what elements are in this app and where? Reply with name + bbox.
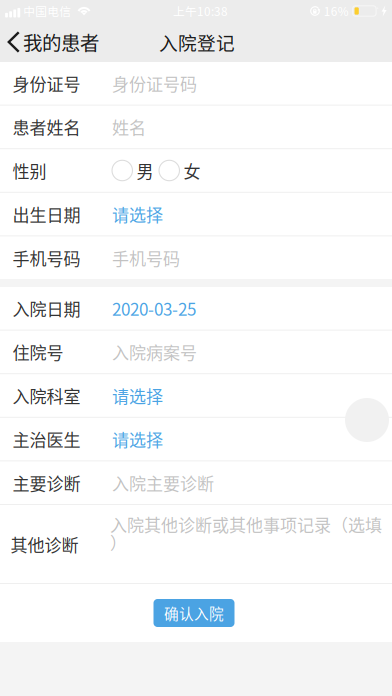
staticText: 住院号 <box>12 339 63 364</box>
button[interactable]: 入院日期 <box>0 287 392 330</box>
button[interactable]: 患者姓名 <box>0 106 392 148</box>
staticText: 手机号码 <box>12 245 80 270</box>
staticText: 入院其他诊断或其他事项记录（选填 <box>110 512 382 537</box>
button[interactable]: 确认入院 <box>155 599 236 627</box>
staticText: 2020-03-25 <box>112 296 196 321</box>
staticText: 16% <box>324 2 349 19</box>
staticText: 中国电信 <box>23 2 71 19</box>
button[interactable]: 住院号 <box>0 331 392 373</box>
button[interactable]: 出生日期 <box>0 193 392 235</box>
staticText: 我的患者 <box>23 28 99 56</box>
staticText: 其他诊断 <box>10 532 78 557</box>
staticText: 入院日期 <box>12 296 80 321</box>
staticText: 请选择 <box>112 202 163 226</box>
staticText: 入院登记 <box>159 28 235 55</box>
button[interactable]: 身份证号 <box>0 62 392 105</box>
staticText: 请选择 <box>112 427 163 451</box>
button[interactable]: 主治医生 <box>0 418 392 460</box>
staticText: 女 <box>183 158 200 183</box>
staticText: 身份证号码 <box>112 71 197 96</box>
button[interactable]: 女 <box>159 158 200 183</box>
staticText: 上午10:38 <box>173 2 228 19</box>
button[interactable]: 手机号码 <box>0 236 392 279</box>
staticText: 姓名 <box>112 114 146 139</box>
staticText: 出生日期 <box>12 202 80 226</box>
button[interactable]: 我的患者 <box>0 24 109 60</box>
button[interactable]: 男 <box>112 158 153 183</box>
staticText: 请选择 <box>112 383 163 408</box>
staticText: 性别 <box>12 158 46 183</box>
staticText: 确认入院 <box>164 602 224 624</box>
staticText: 患者姓名 <box>12 114 80 139</box>
staticText: ） <box>110 530 127 555</box>
staticText: 入院科室 <box>12 383 80 408</box>
staticText: 手机号码 <box>112 245 180 270</box>
staticText: 身份证号 <box>12 71 80 96</box>
staticText: 男 <box>136 158 153 183</box>
staticText: 入院主要诊断 <box>112 470 214 495</box>
staticText: 入院病案号 <box>112 339 197 364</box>
button[interactable]: 入院科室 <box>0 374 392 417</box>
button[interactable]: 主要诊断 <box>0 461 392 504</box>
staticText: 主治医生 <box>12 427 80 451</box>
staticText: 主要诊断 <box>12 470 80 495</box>
button[interactable]: 其他诊断 <box>0 505 392 583</box>
